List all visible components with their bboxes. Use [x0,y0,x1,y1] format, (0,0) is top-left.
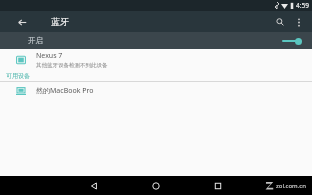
staticText: Nexus 7 [36,51,63,61]
staticText: 蓝牙 [51,16,69,27]
staticText: zol.com.cn [276,182,306,190]
button[interactable]: Back [77,176,111,195]
staticText: 然的MacBook Pro [36,86,94,96]
staticText: 4:59 [296,1,309,10]
staticText: 开启 [28,36,43,45]
button[interactable]: 然的MacBook Pro [0,82,312,100]
button[interactable]: More options [290,13,308,31]
button[interactable]: Nexus 7 [0,49,312,71]
button[interactable]: 开启 [0,32,312,49]
button[interactable]: Back [12,12,32,32]
staticText: 可用设备 [6,72,30,80]
button[interactable]: Recent apps [201,176,235,195]
button[interactable]: Search [270,12,290,32]
staticText: 其他蓝牙设备检测不到此设备 [36,62,108,69]
button[interactable]: Home [139,176,173,195]
